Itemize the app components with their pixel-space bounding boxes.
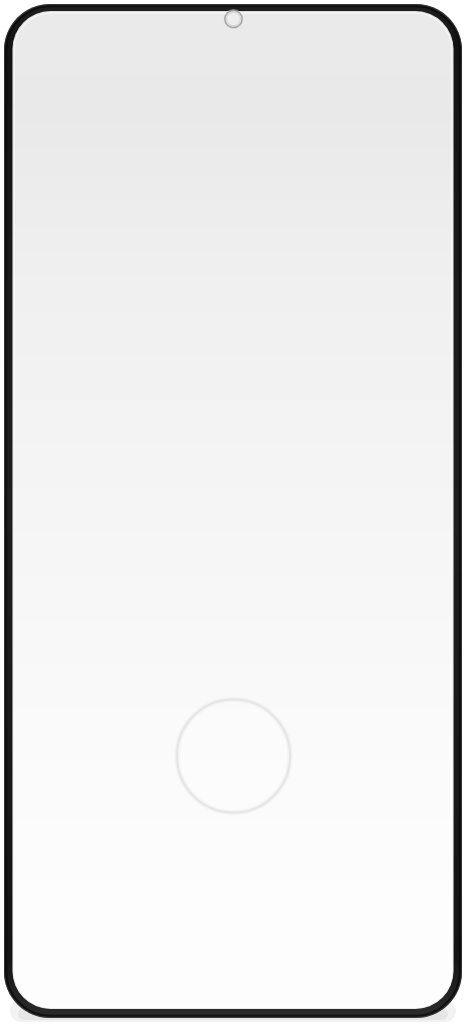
other: Smartphone device mockup <box>0 0 466 1024</box>
